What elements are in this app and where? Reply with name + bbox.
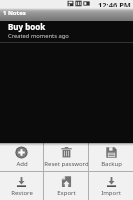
staticText: Restore [11,189,33,197]
button[interactable]: Reset password [44,143,88,171]
staticText: Add [16,160,28,168]
button[interactable]: Restore [0,172,43,200]
button[interactable]: Backup [89,143,133,171]
button[interactable]: Import [89,172,133,200]
button[interactable]: Export [44,172,88,200]
staticText: Buy book [8,21,46,32]
staticText: Export [57,189,76,197]
staticText: Reset password [44,160,88,168]
staticText: 1 Notes [3,9,26,17]
button[interactable]: Add [0,143,43,171]
staticText: 12:46 PM [98,0,131,7]
staticText: Import [101,189,121,197]
staticText: Backup [101,160,122,168]
button[interactable]: Buy book [0,21,133,43]
staticText: Created moments ago [8,32,69,40]
